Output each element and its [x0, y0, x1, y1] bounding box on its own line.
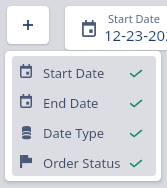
button[interactable]: Start Date	[12, 56, 156, 86]
button[interactable]: Start Date	[65, 6, 167, 50]
staticText: 12-23-2023	[104, 25, 167, 45]
staticText: Date Type	[43, 124, 105, 142]
button[interactable]: Date Type	[12, 116, 156, 146]
button[interactable]: End Date	[12, 86, 156, 116]
staticText: Start Date	[108, 11, 160, 26]
button[interactable]: Add	[7, 6, 49, 44]
button[interactable]: Order Status	[12, 146, 156, 176]
staticText: Order Status	[43, 154, 121, 172]
staticText: End Date	[43, 94, 99, 112]
staticText: Start Date	[43, 64, 105, 82]
